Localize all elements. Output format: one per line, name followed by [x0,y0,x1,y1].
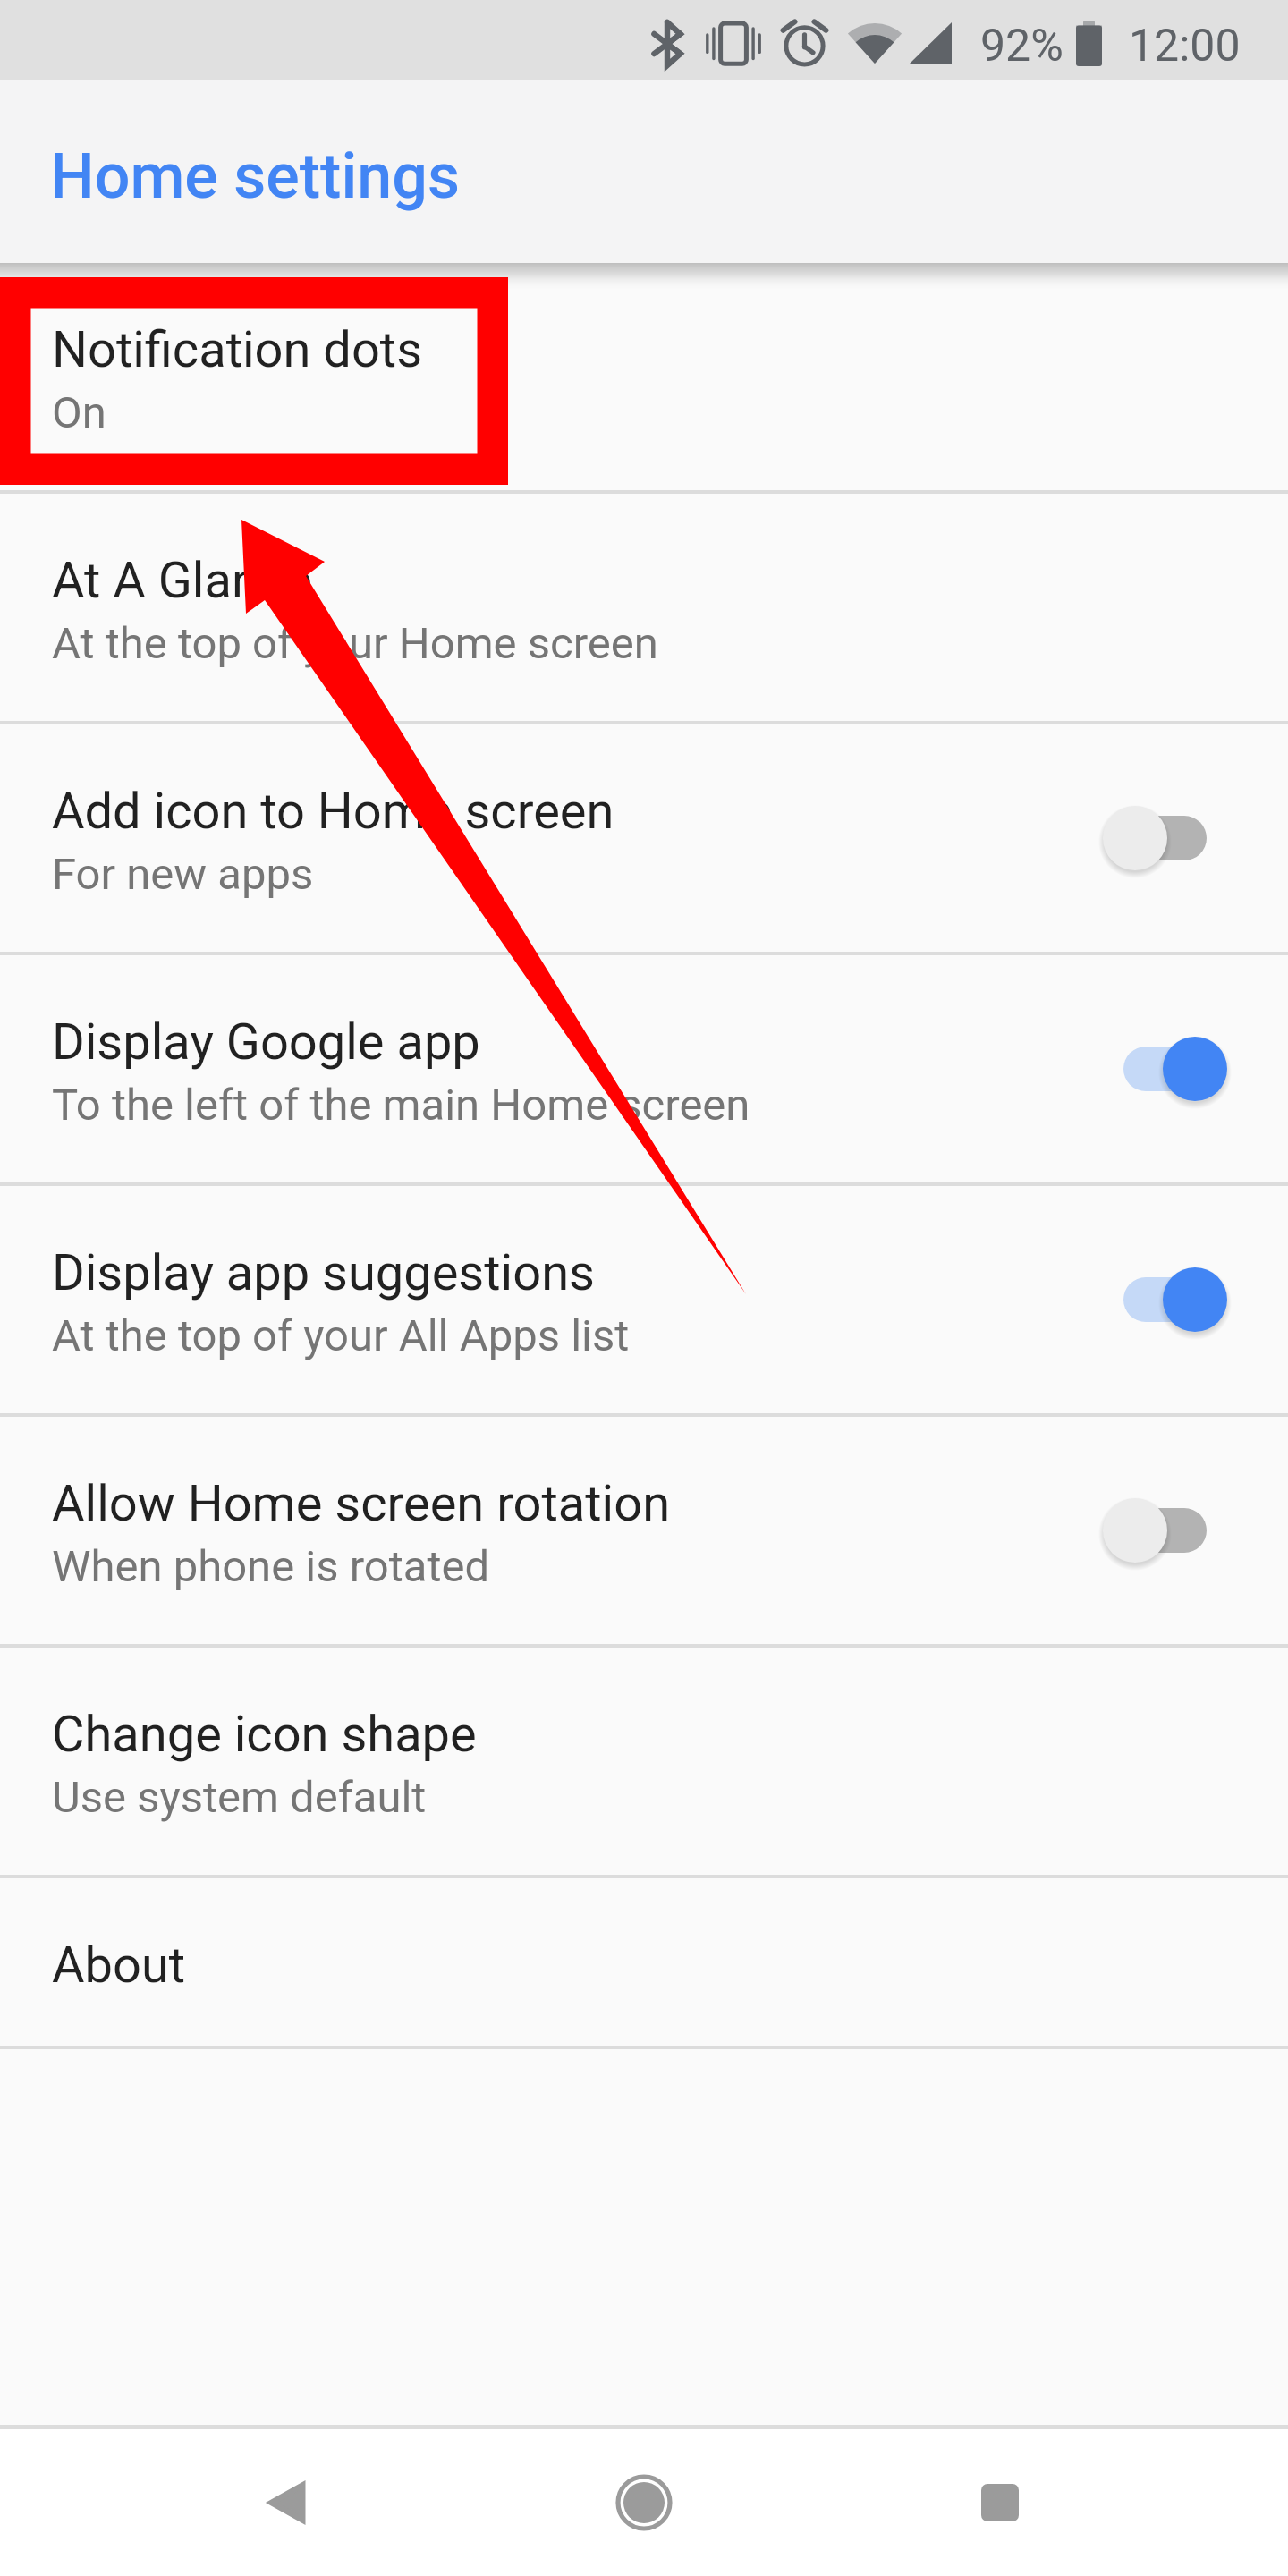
button[interactable] [1111,1259,1218,1340]
staticText: Use system default [52,1772,427,1823]
button[interactable]: About [0,1878,1288,2046]
staticText: At the top of your All Apps list [52,1310,630,1361]
staticText: Notification dots [52,320,423,379]
button[interactable] [1111,798,1218,878]
button[interactable]: Change icon shape [0,1648,1288,1875]
staticText: Display app suggestions [52,1243,595,1302]
staticText: When phone is rotated [52,1541,490,1592]
staticText: 92% [980,20,1063,72]
staticText: At the top of your Home screen [52,618,658,669]
staticText: 12:00 [1129,20,1241,72]
button[interactable] [1111,1029,1218,1109]
staticText: To the left of the main Home screen [52,1080,750,1131]
staticText: At A Glance [52,551,312,610]
button[interactable]: Recents [937,2440,1063,2565]
button[interactable]: Display Google app [0,955,1288,1182]
staticText: Home settings [50,140,460,213]
staticText: On [52,387,106,438]
staticText: Display Google app [52,1013,480,1072]
button[interactable]: Add icon to Home screen [0,724,1288,952]
button[interactable]: Display app suggestions [0,1186,1288,1413]
staticText: Allow Home screen rotation [52,1474,671,1533]
staticText: For new apps [52,849,314,900]
staticText: Change icon shape [52,1705,477,1764]
button[interactable]: Allow Home screen rotation [0,1417,1288,1644]
staticText: Add icon to Home screen [52,782,614,841]
button[interactable]: Back [225,2440,350,2565]
button[interactable]: Notification dots [0,263,1288,490]
button[interactable]: Home [581,2440,707,2565]
button[interactable]: At A Glance [0,494,1288,721]
button[interactable] [1111,1490,1218,1571]
staticText: About [52,1936,186,1995]
